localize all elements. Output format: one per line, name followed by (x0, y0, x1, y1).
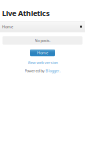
staticText: Home (37, 50, 48, 55)
staticText: No posts. (34, 38, 50, 43)
button[interactable]: Home (0, 22, 85, 32)
staticText: Powered by (24, 68, 45, 73)
button[interactable]: Home (30, 49, 55, 56)
staticText: Live Athletics (2, 8, 50, 18)
staticText: Blogger (45, 68, 59, 73)
button[interactable]: View web version (27, 60, 57, 65)
staticText: Home (2, 24, 13, 29)
staticText: View web version (27, 60, 57, 65)
button[interactable]: Blogger (45, 68, 59, 73)
